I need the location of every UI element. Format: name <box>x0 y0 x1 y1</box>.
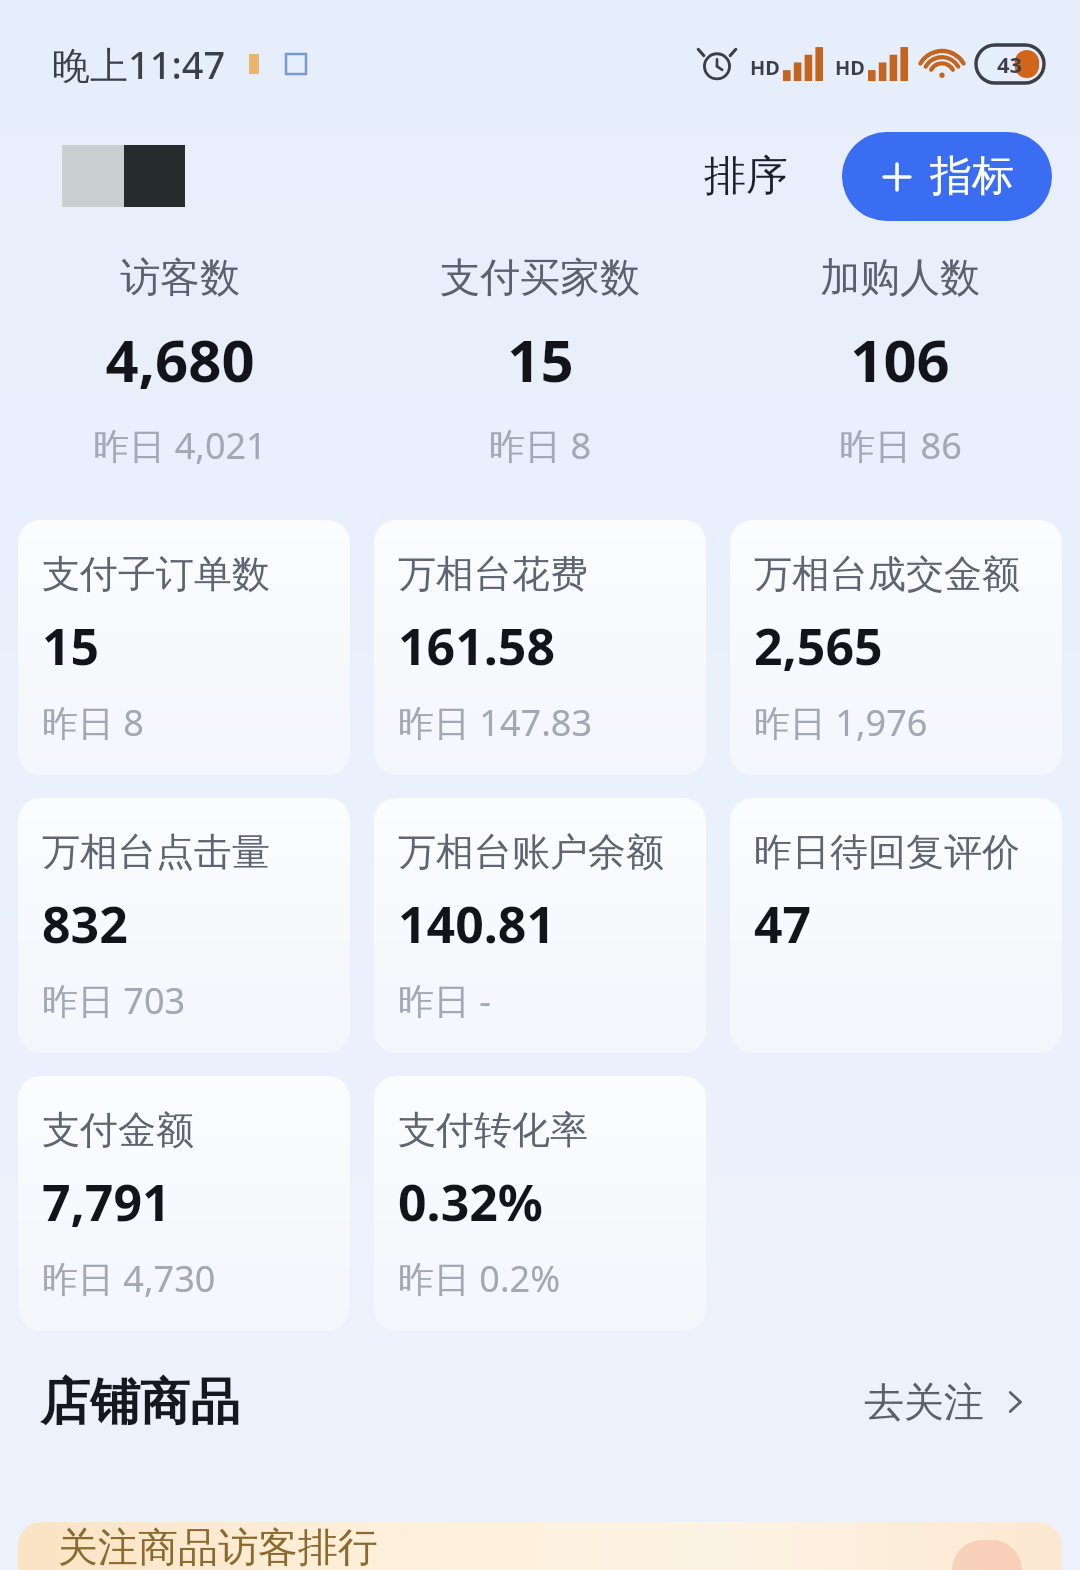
staticText: 2,565 <box>754 612 883 680</box>
staticText: 昨日 86 <box>839 421 962 470</box>
button[interactable]: 支付买家数 <box>360 246 720 476</box>
staticText: 店铺商品 <box>40 1371 240 1434</box>
button[interactable]: 支付金额 <box>18 1076 350 1331</box>
button[interactable]: 万相台花费 <box>374 520 706 775</box>
staticText: 关注商品访客排行 <box>58 1522 378 1570</box>
button[interactable]: 关注商品访客排行 <box>18 1522 1062 1570</box>
staticText: 昨日 8 <box>489 421 591 470</box>
staticText: 7,791 <box>42 1168 171 1236</box>
staticText: 4,680 <box>105 320 255 399</box>
staticText: 万相台点击量 <box>42 828 270 876</box>
staticText: 昨日 4,021 <box>93 421 267 470</box>
staticText: 加购人数 <box>820 252 980 302</box>
staticText: 昨日 8 <box>42 698 144 747</box>
staticText: 昨日 0.2% <box>398 1254 561 1303</box>
staticText: 140.81 <box>398 890 556 958</box>
button[interactable]: 昨日待回复评价 <box>730 798 1062 1053</box>
staticText: 昨日待回复评价 <box>754 828 1020 876</box>
staticText: 万相台花费 <box>398 550 588 598</box>
staticText: 昨日 147.83 <box>398 698 592 747</box>
button[interactable]: 万相台点击量 <box>18 798 350 1053</box>
staticText: 支付买家数 <box>440 252 640 302</box>
staticText: 支付子订单数 <box>42 550 270 598</box>
staticText: 支付转化率 <box>398 1106 588 1154</box>
staticText: 15 <box>507 320 574 399</box>
staticText: 43 <box>997 49 1023 79</box>
button[interactable]: 去关注 <box>854 1367 1040 1437</box>
staticText: 昨日 703 <box>42 976 186 1025</box>
staticText: 支付金额 <box>42 1106 194 1154</box>
button[interactable]: 访客数 <box>0 246 360 476</box>
staticText: 昨日 1,976 <box>754 698 928 747</box>
staticText: 晚上11:47 <box>52 38 226 90</box>
staticText: 指标 <box>930 150 1014 203</box>
staticText: 47 <box>754 890 812 958</box>
staticText: 排序 <box>704 150 788 203</box>
button[interactable]: 排序 <box>692 142 800 211</box>
staticText: 访客数 <box>120 252 240 302</box>
staticText: 15 <box>42 612 100 680</box>
button[interactable]: 指标 <box>842 132 1052 221</box>
staticText: 昨日 4,730 <box>42 1254 216 1303</box>
staticText: 万相台账户余额 <box>398 828 664 876</box>
button[interactable]: 加购人数 <box>720 246 1080 476</box>
staticText: HD <box>835 54 865 81</box>
staticText: HD <box>750 54 780 81</box>
button[interactable]: 支付子订单数 <box>18 520 350 775</box>
staticText: 0.32% <box>398 1168 543 1236</box>
button[interactable]: 万相台成交金额 <box>730 520 1062 775</box>
staticText: 去关注 <box>864 1377 984 1427</box>
button[interactable]: 支付转化率 <box>374 1076 706 1331</box>
staticText: 万相台成交金额 <box>754 550 1020 598</box>
staticText: 106 <box>850 320 950 399</box>
staticText: 161.58 <box>398 612 556 680</box>
staticText: 昨日 - <box>398 976 491 1025</box>
staticText: 832 <box>42 890 128 958</box>
button[interactable]: 万相台账户余额 <box>374 798 706 1053</box>
